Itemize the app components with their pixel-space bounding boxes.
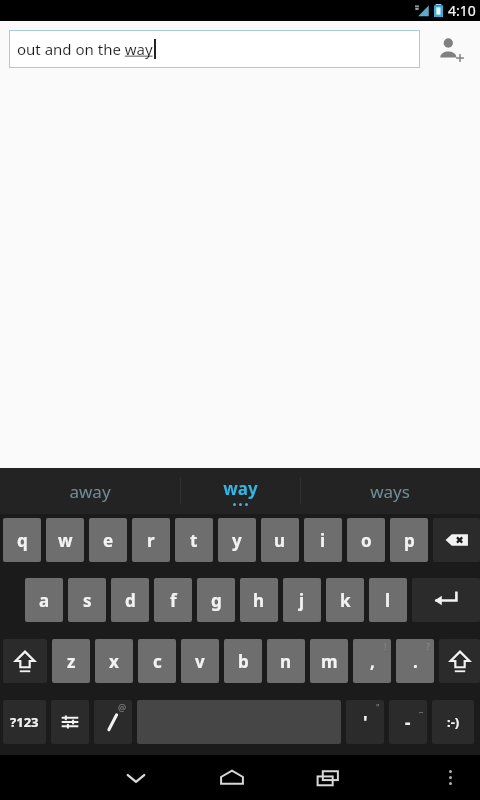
button[interactable]: _ [389,700,427,744]
button[interactable]: l [369,578,407,622]
button[interactable]: s [68,578,106,622]
staticText: h [253,589,265,612]
staticText: e [103,529,114,552]
button[interactable]: ? [396,639,434,683]
staticText: r [147,529,155,552]
button[interactable]: t [175,518,213,562]
button[interactable]: w [46,518,84,562]
staticText: f [170,589,177,612]
staticText: u [274,529,286,552]
staticText: z [67,650,76,673]
staticText: " [376,701,380,713]
staticText: g [211,589,222,612]
staticText: k [340,589,351,612]
staticText: ' [363,711,368,734]
staticText: c [153,650,162,673]
button[interactable]: Delete [433,518,480,562]
staticText: o [361,529,372,552]
button[interactable]: More options [426,755,474,800]
button[interactable]: q [3,518,41,562]
button[interactable]: away [0,468,180,514]
staticText: :-) [447,713,460,731]
staticText: y [232,529,242,552]
button[interactable]: ! [353,639,391,683]
staticText: ?123 [10,713,39,731]
button[interactable]: u [261,518,299,562]
button[interactable]: Shift [439,639,480,683]
staticText: away [69,480,111,503]
button[interactable]: way [180,468,300,514]
staticText: p [404,529,415,552]
button[interactable]: a [25,578,63,622]
staticText: d [125,589,136,612]
staticText: ways [370,480,410,503]
button[interactable]: Recent apps [302,755,354,800]
button[interactable]: Home [206,755,258,800]
staticText: way [223,477,258,500]
staticText: x [109,650,119,673]
button[interactable]: ways [300,468,480,514]
staticText: m [321,650,338,673]
button[interactable]: j [283,578,321,622]
button[interactable]: e [89,518,127,562]
button[interactable]: d [111,578,149,622]
button[interactable]: " [346,700,384,744]
staticText: i [320,529,326,552]
staticText: v [195,650,205,673]
button[interactable]: out and on the way [9,30,420,68]
button[interactable]: Input settings [51,700,89,744]
button[interactable]: v [181,639,219,683]
button[interactable]: r [132,518,170,562]
staticText: l [385,589,391,612]
staticText: , [370,650,375,673]
staticText: @ [118,701,127,713]
button[interactable]: x [95,639,133,683]
staticText: s [83,589,92,612]
button[interactable]: Slash [94,700,132,744]
button[interactable]: y [218,518,256,562]
button[interactable]: p [390,518,428,562]
button[interactable]: Hide keyboard [110,755,162,800]
button[interactable]: i [304,518,342,562]
staticText: q [17,529,28,552]
button[interactable]: z [52,639,90,683]
button[interactable]: Shift [3,639,47,683]
staticText: ! [384,640,387,652]
staticText: t [190,529,198,552]
staticText: . [413,650,418,673]
button[interactable]: g [197,578,235,622]
button[interactable]: :-) [432,700,474,744]
button[interactable]: Enter [412,578,480,622]
staticText: out and on the way [17,39,153,59]
button[interactable]: o [347,518,385,562]
button[interactable]: h [240,578,278,622]
button[interactable]: f [154,578,192,622]
staticText: b [238,650,249,673]
staticText: ? [426,640,430,652]
button[interactable]: n [267,639,305,683]
button[interactable]: b [224,639,262,683]
staticText: 4:10 [448,1,476,20]
staticText: _ [419,701,423,713]
staticText: a [39,589,50,612]
staticText: n [280,650,292,673]
button[interactable]: c [138,639,176,683]
button[interactable]: Add contact [428,26,474,72]
staticText: j [299,589,305,612]
button[interactable]: k [326,578,364,622]
staticText: - [405,711,411,734]
staticText: w [58,529,73,552]
button[interactable]: m [310,639,348,683]
button[interactable]: ?123 [3,700,46,744]
